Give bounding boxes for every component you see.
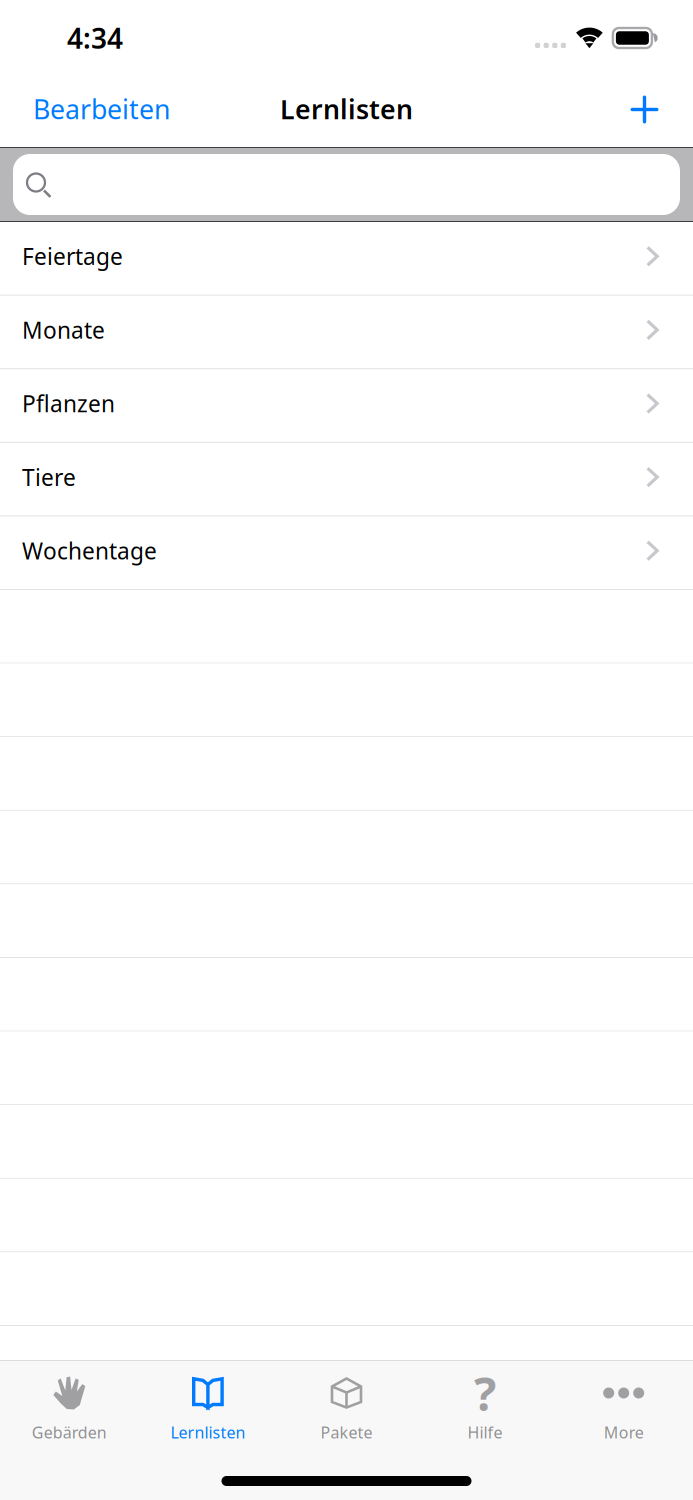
staticText: Tiere: [22, 462, 76, 492]
button[interactable]: Pakete: [277, 1361, 416, 1449]
staticText: Pakete: [320, 1422, 372, 1443]
staticText: Monate: [22, 315, 105, 345]
button[interactable]: ?: [416, 1361, 554, 1449]
staticText: Bearbeiten: [33, 91, 170, 127]
staticText: Pflanzen: [22, 388, 115, 418]
button[interactable]: More: [554, 1361, 693, 1449]
button[interactable]: Gebärden: [0, 1361, 139, 1449]
staticText: Hilfe: [468, 1422, 503, 1443]
staticText: Lernlisten: [280, 91, 413, 127]
staticText: Feiertage: [22, 241, 123, 271]
button[interactable]: Add list: [618, 83, 671, 140]
button[interactable]: Pflanzen: [0, 369, 693, 443]
button[interactable]: Lernlisten: [139, 1361, 277, 1449]
staticText: Lernlisten: [170, 1422, 245, 1443]
button[interactable]: Bearbeiten: [22, 79, 181, 144]
button[interactable]: Tiere: [0, 443, 693, 516]
button[interactable]: Feiertage: [0, 222, 693, 296]
staticText: 4:34: [67, 19, 123, 57]
staticText: Wochentage: [22, 536, 157, 566]
staticText: Gebärden: [32, 1422, 107, 1443]
staticText: More: [604, 1422, 644, 1443]
button[interactable]: Wochentage: [0, 516, 693, 590]
staticText: ?: [474, 1362, 496, 1424]
button[interactable]: Monate: [0, 296, 693, 369]
